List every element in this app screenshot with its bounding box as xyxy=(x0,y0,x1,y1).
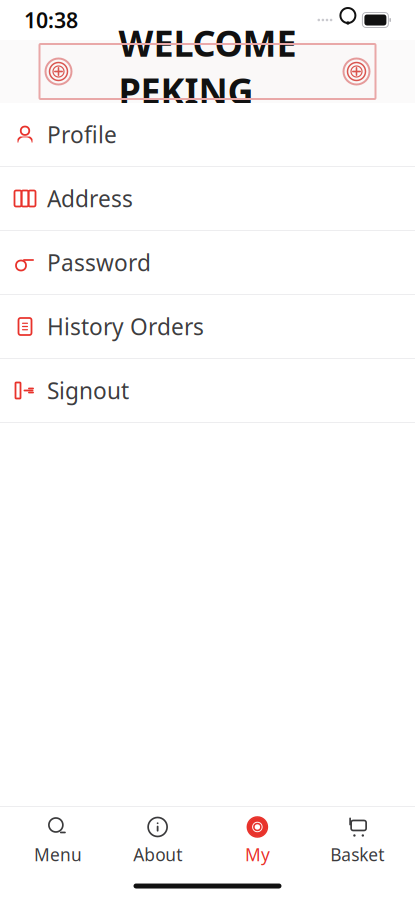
button[interactable]: Address xyxy=(0,167,415,231)
button[interactable]: History Orders xyxy=(0,295,415,359)
staticText: Profile xyxy=(47,119,117,149)
staticText: Menu xyxy=(34,843,82,866)
button[interactable]: Profile xyxy=(0,103,415,167)
staticText: WELCOME PEKING xyxy=(118,19,296,114)
button[interactable]: My xyxy=(207,807,307,872)
staticText: Password xyxy=(47,247,151,277)
staticText: My xyxy=(245,843,270,866)
staticText: Address xyxy=(47,183,133,213)
button[interactable]: Password xyxy=(0,231,415,295)
staticText: Basket xyxy=(330,843,384,866)
staticText: 10:38 xyxy=(24,6,78,34)
button[interactable]: Menu xyxy=(8,807,108,872)
staticText: History Orders xyxy=(47,311,204,341)
staticText: Signout xyxy=(47,375,129,405)
button[interactable]: About xyxy=(108,807,208,872)
button[interactable]: Signout xyxy=(0,359,415,423)
staticText: About xyxy=(133,843,182,866)
button[interactable]: Basket xyxy=(307,807,407,872)
